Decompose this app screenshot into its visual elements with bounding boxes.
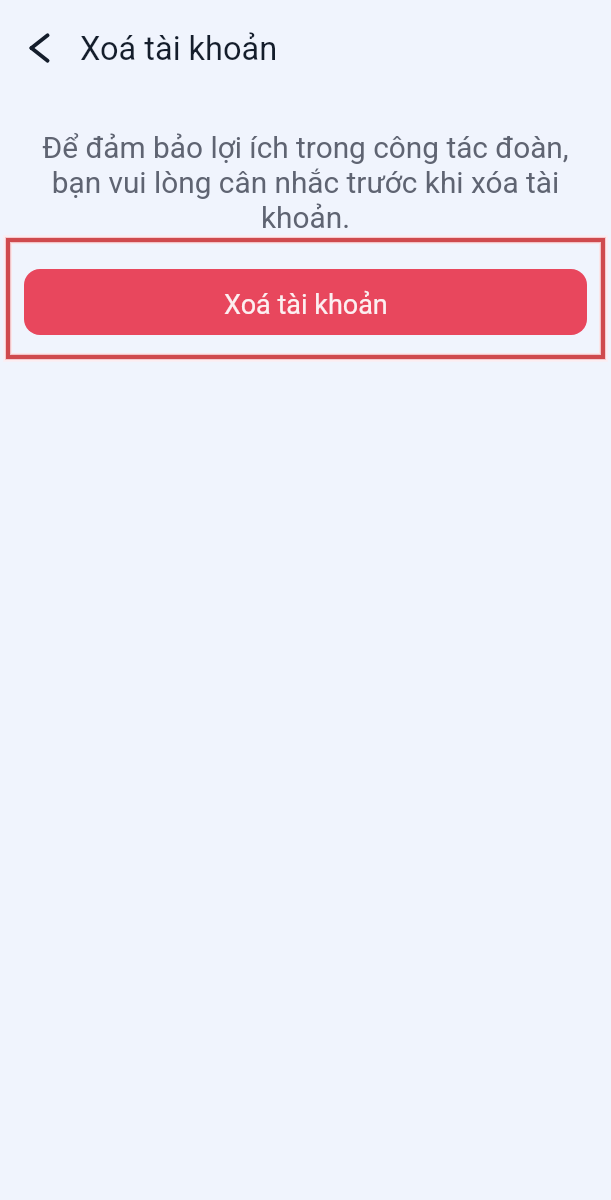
staticText: Để đảm bảo lợi ích trong công tác đoàn, … <box>30 130 581 235</box>
staticText: Xoá tài khoản <box>224 289 388 321</box>
button[interactable]: Xoá tài khoản <box>24 269 587 335</box>
staticText: Xoá tài khoản <box>80 30 278 68</box>
button[interactable]: Back <box>21 28 61 68</box>
